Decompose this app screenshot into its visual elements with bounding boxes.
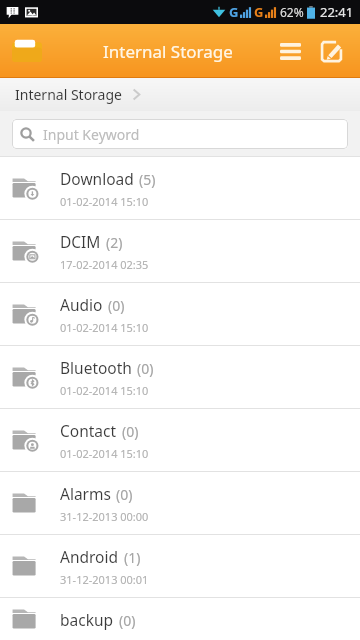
staticText: 31-12-2013 00:00 <box>60 509 149 524</box>
button[interactable]: App <box>9 33 45 69</box>
button[interactable]: Bluetooth <box>0 346 360 408</box>
staticText: Alarms <box>60 483 111 504</box>
staticText: 62% <box>280 4 304 20</box>
staticText: Internal Storage <box>15 85 122 104</box>
staticText: Audio <box>60 294 103 315</box>
staticText: G <box>229 3 239 21</box>
button[interactable]: Internal Storage <box>13 81 124 108</box>
staticText: G <box>254 3 264 21</box>
staticText: Bluetooth <box>60 357 132 378</box>
staticText: (2) <box>106 233 123 252</box>
staticText: 01-02-2014 15:10 <box>60 383 149 398</box>
staticText: Internal Storage <box>103 40 233 63</box>
button[interactable]: DCIM <box>0 220 360 282</box>
staticText: (0) <box>108 296 125 315</box>
staticText: 22:41 <box>320 3 354 21</box>
button[interactable]: Alarms <box>0 472 360 534</box>
staticText: Contact <box>60 420 117 441</box>
staticText: (0) <box>137 359 154 378</box>
staticText: 01-02-2014 15:10 <box>60 320 149 335</box>
staticText: Android <box>60 546 119 567</box>
button[interactable]: backup <box>0 598 360 640</box>
button[interactable]: Input Keyword <box>12 119 348 149</box>
staticText: (1) <box>124 548 141 567</box>
staticText: 17-02-2014 02:35 <box>60 257 149 272</box>
staticText: (0) <box>116 485 133 504</box>
staticText: (0) <box>119 611 136 630</box>
staticText: Download <box>60 168 134 189</box>
button[interactable]: Download <box>0 157 360 219</box>
staticText: (5) <box>139 170 156 189</box>
button[interactable]: Edit <box>310 30 352 72</box>
staticText: Input Keyword <box>43 125 140 144</box>
button[interactable]: Android <box>0 535 360 597</box>
staticText: 01-02-2014 15:10 <box>60 446 149 461</box>
staticText: 01-02-2014 15:10 <box>60 194 149 209</box>
staticText: (0) <box>122 422 139 441</box>
staticText: DCIM <box>60 231 101 252</box>
button[interactable]: Contact <box>0 409 360 471</box>
staticText: backup <box>60 609 114 630</box>
button[interactable]: Menu <box>270 31 310 71</box>
staticText: 31-12-2013 00:01 <box>60 572 149 587</box>
button[interactable]: Audio <box>0 283 360 345</box>
